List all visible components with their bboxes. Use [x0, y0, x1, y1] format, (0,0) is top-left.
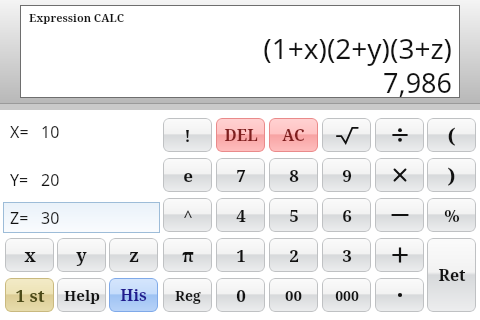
button[interactable]: 6 [322, 198, 371, 232]
button[interactable]: Multiply [375, 158, 424, 192]
button[interactable]: 00 [269, 278, 318, 312]
button[interactable]: 3 [322, 238, 371, 272]
button[interactable]: Ret [427, 238, 476, 312]
button[interactable]: Y= [10, 165, 160, 195]
staticText: 6 [342, 204, 352, 227]
staticText: x [24, 243, 36, 268]
staticText: z [129, 243, 139, 268]
staticText: 20 [41, 169, 60, 191]
button[interactable]: X= [10, 117, 160, 147]
button[interactable]: 2 [269, 238, 318, 272]
staticText: Ret [438, 264, 466, 286]
staticText: 4 [236, 204, 246, 227]
staticText: 00 [285, 285, 302, 305]
staticText: 7,986 [20, 64, 452, 101]
staticText: π [182, 243, 194, 268]
staticText: AC [282, 124, 305, 146]
staticText: 000 [335, 286, 359, 305]
button[interactable]: 9 [322, 158, 371, 192]
staticText: Expression CALC [29, 10, 125, 25]
staticText: ( [447, 122, 456, 149]
staticText: 3 [342, 244, 352, 267]
staticText: % [444, 204, 460, 227]
staticText: X= [10, 121, 29, 143]
button[interactable]: y [57, 238, 106, 272]
staticText: 0 [236, 284, 246, 307]
staticText: 5 [289, 204, 299, 227]
staticText: Reg [175, 286, 201, 305]
button[interactable]: 1 st [5, 278, 54, 312]
staticText: 2 [289, 244, 299, 267]
staticText: ! [184, 124, 191, 147]
staticText: DEL [224, 124, 258, 146]
button[interactable]: x [5, 238, 54, 272]
staticText: 30 [41, 207, 60, 229]
button[interactable]: ! [163, 118, 212, 152]
staticText: ^ [183, 204, 193, 227]
button[interactable]: Z= [3, 202, 160, 233]
staticText: (1+x)(2+y)(3+z) [20, 29, 452, 67]
button[interactable]: Help [57, 278, 106, 312]
button[interactable]: Decimal point [375, 278, 424, 312]
button[interactable]: Square root [322, 118, 371, 152]
button[interactable]: z [109, 238, 158, 272]
button[interactable]: 000 [322, 278, 371, 312]
button[interactable]: 5 [269, 198, 318, 232]
staticText: Y= [10, 169, 29, 191]
button[interactable]: 7 [216, 158, 265, 192]
button[interactable]: DEL [216, 118, 265, 152]
staticText: 7 [236, 164, 246, 187]
staticText: 9 [342, 164, 352, 187]
button[interactable]: e [163, 158, 212, 192]
staticText: His [120, 284, 147, 306]
button[interactable]: 8 [269, 158, 318, 192]
staticText: 1 st [15, 284, 45, 307]
button[interactable]: ( [427, 118, 476, 152]
button[interactable]: Plus [375, 238, 424, 272]
staticText: Help [64, 285, 100, 305]
button[interactable]: π [163, 238, 212, 272]
staticText: 8 [289, 164, 299, 187]
button[interactable]: AC [269, 118, 318, 152]
button[interactable]: 0 [216, 278, 265, 312]
staticText: 10 [41, 121, 60, 143]
button[interactable]: ^ [163, 198, 212, 232]
staticText: ) [447, 162, 456, 189]
staticText: e [183, 164, 193, 187]
button[interactable]: His [109, 278, 158, 312]
button[interactable]: Reg [163, 278, 212, 312]
staticText: 1 [236, 244, 246, 267]
button[interactable]: 4 [216, 198, 265, 232]
staticText: y [76, 243, 87, 268]
staticText: Z= [10, 207, 29, 229]
button[interactable]: Minus [375, 198, 424, 232]
button[interactable]: % [427, 198, 476, 232]
button[interactable]: Divide [375, 118, 424, 152]
button[interactable]: 1 [216, 238, 265, 272]
button[interactable]: ) [427, 158, 476, 192]
